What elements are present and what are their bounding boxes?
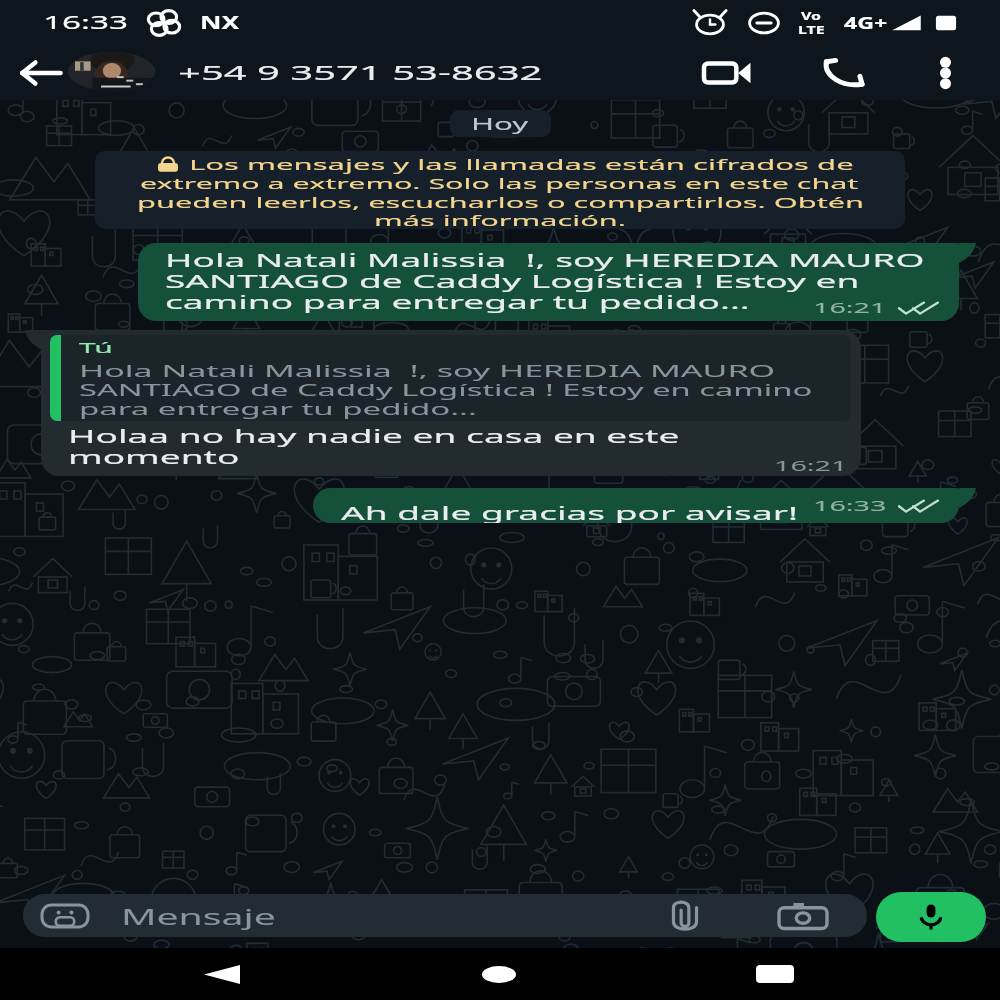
staticText: Ah dale gracias por avisar! xyxy=(341,501,798,523)
staticText: LTE xyxy=(798,23,825,37)
button[interactable]: Tú xyxy=(41,330,861,476)
button[interactable]: Recent apps xyxy=(745,948,805,1000)
staticText: Los mensajes y las llamadas están cifrad… xyxy=(189,154,854,174)
staticText: 16:33 xyxy=(813,496,887,515)
button[interactable]: More options xyxy=(920,45,970,100)
staticText: Holaa no hay nadie en casa en este xyxy=(68,424,680,449)
button[interactable]: Ah dale gracias por avisar! xyxy=(313,488,959,523)
staticText: 4G+ xyxy=(844,12,887,34)
staticText: Mensaje xyxy=(121,901,276,931)
staticText: para entregar tu pedido... xyxy=(79,397,477,419)
staticText: momento xyxy=(68,445,241,470)
staticText: camino para entregar tu pedido... xyxy=(165,290,750,315)
staticText: Hola Natali Malissia !, soy HEREDIA MAUR… xyxy=(165,248,925,273)
staticText: Hola Natali Malissia !, soy HEREDIA MAUR… xyxy=(79,359,775,381)
button[interactable]: Back xyxy=(12,45,70,100)
staticText: SANTIAGO de Caddy Logística ! Estoy en xyxy=(165,269,861,294)
button[interactable]: +54 9 3571 53-8632 xyxy=(178,59,544,86)
button[interactable]: Home xyxy=(469,948,529,1000)
button[interactable]: Record voice message xyxy=(876,892,986,942)
button[interactable]: Camera xyxy=(771,894,835,937)
staticText: más información. xyxy=(374,210,626,229)
staticText: 16:33 xyxy=(43,10,130,35)
staticText: Tú xyxy=(79,337,113,357)
button[interactable]: Attach xyxy=(653,894,717,937)
button[interactable]: Call xyxy=(814,45,874,100)
staticText: 16:21 xyxy=(813,298,887,317)
staticText: 16:21 xyxy=(774,456,848,475)
staticText: SANTIAGO de Caddy Logística ! Estoy en c… xyxy=(79,378,814,400)
staticText: NX xyxy=(200,11,240,34)
staticText: extremo a extremo. Solo las personas en … xyxy=(140,173,860,193)
staticText: Vo xyxy=(801,9,822,23)
button[interactable]: Back xyxy=(192,948,252,1000)
button[interactable] xyxy=(68,52,155,91)
staticText: Hoy xyxy=(471,113,529,135)
button[interactable]: Hola Natali Malissia !, soy HEREDIA MAUR… xyxy=(138,243,959,321)
button[interactable]: Video call xyxy=(696,45,756,100)
staticText: pueden leerlos, escucharlos o compartirl… xyxy=(137,192,864,212)
button[interactable]: Mensaje xyxy=(23,894,867,937)
